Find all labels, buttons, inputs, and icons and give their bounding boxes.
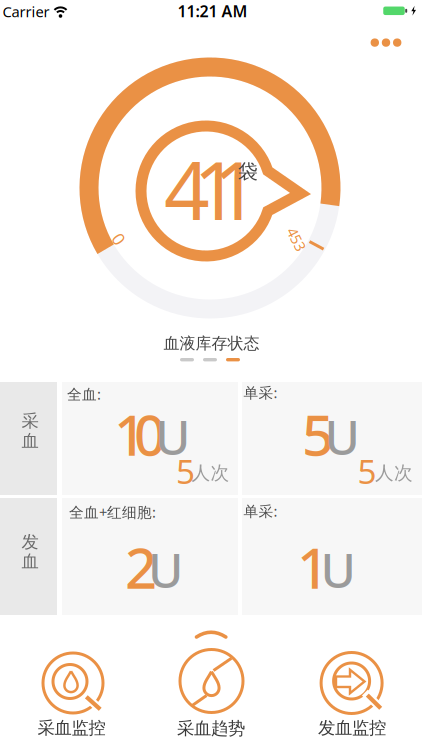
staticText: 453 (284, 229, 308, 249)
staticText: Carrier (2, 2, 49, 21)
staticText: 0 (134, 397, 166, 471)
staticText: 人次 (191, 461, 229, 484)
staticText: 血 (21, 551, 38, 572)
staticText: 0 (114, 227, 124, 250)
staticText: 1 (213, 136, 259, 242)
staticText: 单采: (243, 383, 277, 402)
staticText: 血 (21, 430, 38, 452)
staticText: 11:21 AM (177, 0, 247, 22)
staticText: U (148, 538, 183, 601)
staticText: 4 (164, 136, 210, 242)
button[interactable] (371, 38, 401, 47)
staticText: U (155, 405, 190, 468)
button[interactable]: 发血监控 (318, 649, 386, 738)
button[interactable]: 采血监控 (39, 649, 105, 738)
staticText: 袋 (238, 159, 258, 184)
staticText: 血液库存状态 (163, 334, 259, 353)
staticText: 采 (21, 410, 38, 432)
staticText: 发血监控 (318, 717, 386, 739)
staticText: 全血+红细胞: (69, 502, 156, 522)
staticText: 人次 (375, 461, 413, 484)
button[interactable]: 采血趋势 (178, 626, 244, 737)
staticText: 1 (193, 136, 239, 242)
staticText: 1 (114, 397, 146, 471)
staticText: 发 (21, 531, 38, 553)
staticText: U (320, 538, 355, 601)
staticText: 采血趋势 (177, 718, 245, 739)
staticText: 5 (176, 449, 195, 493)
staticText: 5 (302, 397, 334, 471)
staticText: 2 (125, 530, 157, 604)
staticText: 全血: (67, 384, 101, 404)
staticText: U (324, 405, 359, 468)
staticText: 单采: (243, 501, 277, 521)
staticText: 采血监控 (37, 717, 105, 739)
staticText: 1 (297, 530, 329, 604)
staticText: 5 (357, 449, 376, 493)
